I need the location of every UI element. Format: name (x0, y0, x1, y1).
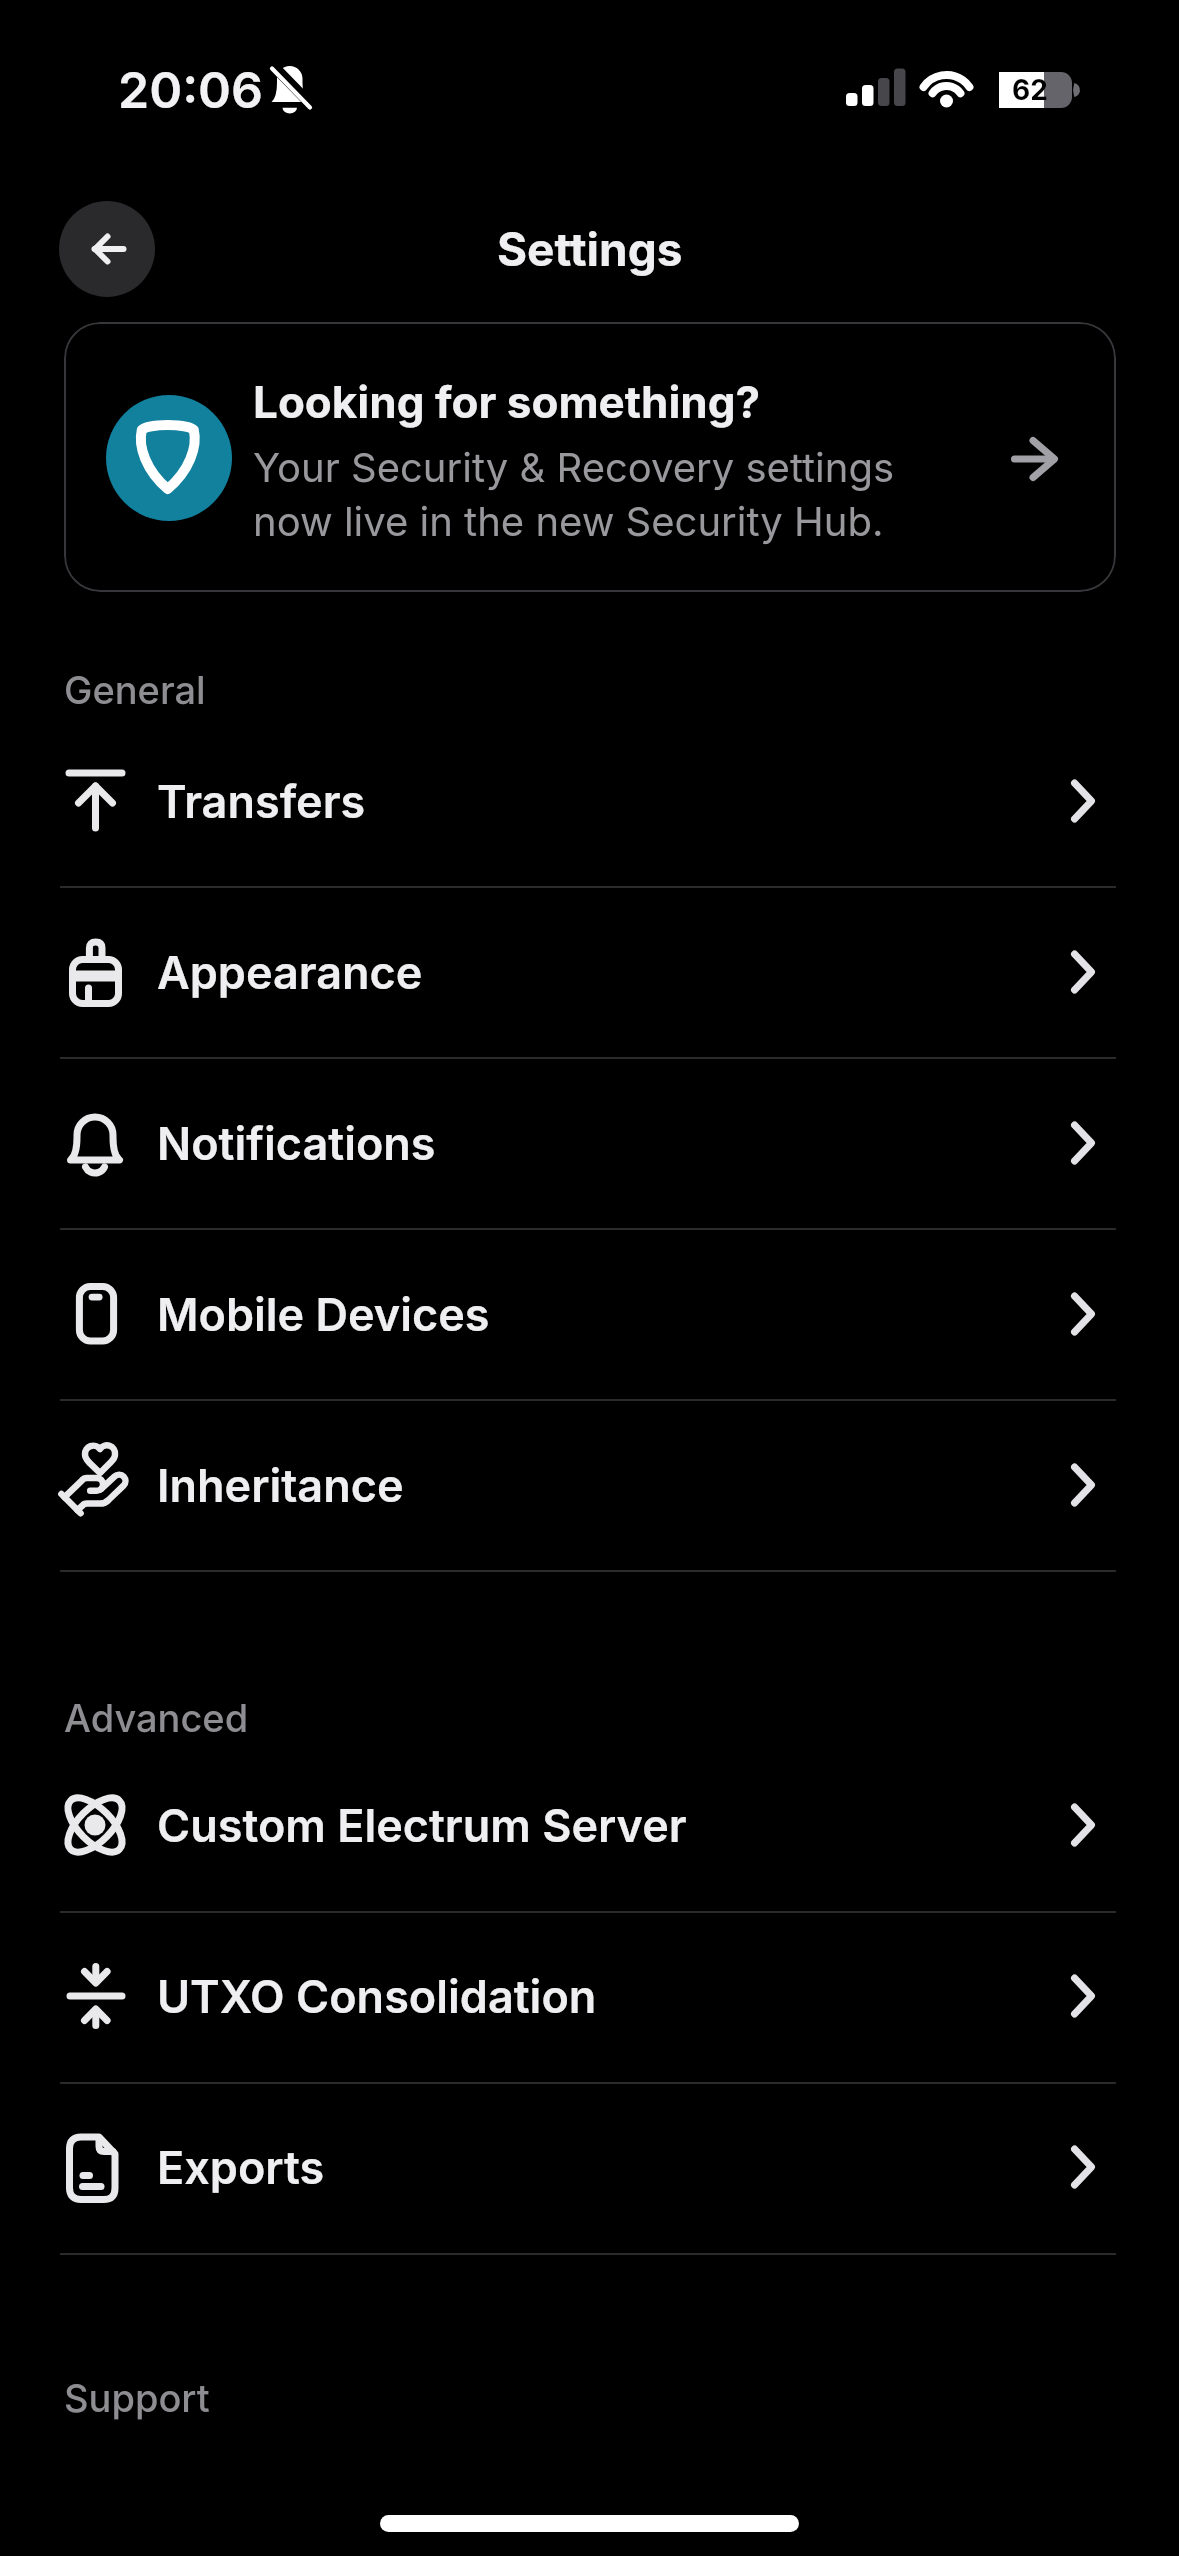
staticText: Transfers (157, 774, 366, 828)
staticText: Exports (157, 2140, 325, 2194)
staticText: Inheritance (157, 1458, 404, 1512)
button[interactable] (0, 1229, 1179, 1400)
staticText: Custom Electrum Server (157, 1798, 687, 1852)
staticText: Notifications (157, 1116, 436, 1170)
button[interactable] (59, 201, 155, 297)
button[interactable] (64, 322, 1116, 592)
button[interactable] (0, 1058, 1179, 1229)
button[interactable] (0, 1911, 1179, 2082)
staticText: Appearance (157, 945, 423, 999)
staticText: 20:06 (118, 60, 264, 120)
staticText: UTXO Consolidation (157, 1969, 597, 2023)
staticText: Settings (497, 221, 683, 277)
button[interactable] (0, 1400, 1179, 1571)
staticText: Advanced (64, 1695, 249, 1741)
button[interactable] (0, 716, 1179, 887)
staticText: General (64, 667, 206, 713)
staticText: Support (64, 2375, 210, 2421)
staticText: Your Security & Recovery settings now li… (253, 443, 895, 546)
staticText: Looking for something? (253, 375, 761, 428)
button[interactable] (0, 1740, 1179, 1911)
staticText: 62 (1012, 73, 1048, 107)
button[interactable] (0, 2082, 1179, 2253)
staticText: Mobile Devices (157, 1287, 490, 1341)
button[interactable] (0, 887, 1179, 1058)
